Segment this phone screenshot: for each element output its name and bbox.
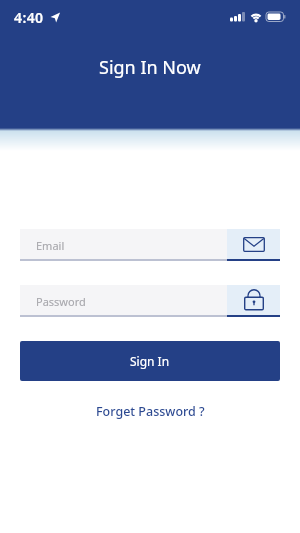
staticText: Email <box>36 238 65 253</box>
staticText: Password <box>36 294 86 309</box>
button[interactable]: Email <box>20 229 280 261</box>
button[interactable]: Password <box>20 285 280 317</box>
staticText: Sign In Now <box>99 55 201 80</box>
staticText: Sign In <box>130 353 170 369</box>
staticText: 4:40 <box>14 8 44 27</box>
button[interactable]: Forget Password ? <box>96 403 205 420</box>
button[interactable]: Sign In <box>20 341 280 381</box>
